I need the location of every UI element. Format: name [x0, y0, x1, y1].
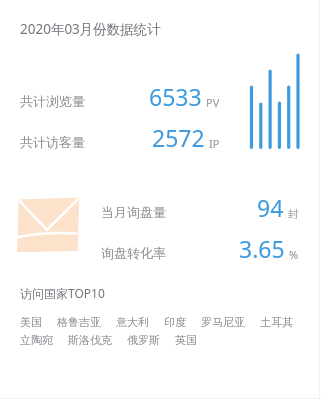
button[interactable]: 印度	[164, 315, 186, 329]
button[interactable]	[0, 119, 236, 157]
button[interactable]: 罗马尼亚	[201, 315, 245, 329]
staticText: 立陶宛	[20, 333, 53, 347]
button[interactable]: 访问国家TOP10	[8, 280, 128, 306]
staticText: 共计浏览量	[20, 93, 85, 109]
button[interactable]: 意大利	[116, 315, 149, 329]
button[interactable]	[92, 192, 308, 230]
other: 访问趋势柱状图	[248, 50, 300, 148]
staticText: 访问国家TOP10	[20, 285, 105, 301]
button[interactable]: 美国	[20, 315, 42, 329]
button[interactable]: 2020年03月份数据统计	[8, 14, 208, 44]
staticText: %	[289, 247, 299, 262]
staticText: 2572	[152, 122, 205, 153]
staticText: 当月询盘量	[101, 204, 166, 220]
other: 询盘邮件	[16, 196, 80, 254]
staticText: 2020年03月份数据统计	[20, 20, 161, 38]
button[interactable]: 俄罗斯	[127, 333, 160, 347]
staticText: 俄罗斯	[127, 333, 160, 347]
staticText: 罗马尼亚	[201, 315, 245, 329]
staticText: 封	[288, 207, 299, 221]
staticText: 斯洛伐克	[68, 333, 112, 347]
staticText: 美国	[20, 315, 42, 329]
staticText: IP	[209, 136, 220, 151]
staticText: PV	[206, 95, 220, 110]
staticText: 94	[257, 192, 284, 223]
staticText: 共计访客量	[20, 134, 85, 150]
staticText: 土耳其	[260, 315, 293, 329]
button[interactable]: 立陶宛	[20, 333, 53, 347]
button[interactable]	[0, 78, 236, 116]
button[interactable]: 格鲁吉亚	[57, 315, 101, 329]
staticText: 英国	[175, 333, 197, 347]
staticText: 3.65	[239, 233, 285, 264]
staticText: 6533	[149, 81, 202, 112]
staticText: 询盘转化率	[101, 245, 166, 261]
button[interactable]: 英国	[175, 333, 197, 347]
staticText: 意大利	[116, 315, 149, 329]
button[interactable]	[92, 233, 308, 271]
staticText: 格鲁吉亚	[57, 315, 101, 329]
staticText: 印度	[164, 315, 186, 329]
button[interactable]: 斯洛伐克	[68, 333, 112, 347]
button[interactable]: 土耳其	[260, 315, 293, 329]
